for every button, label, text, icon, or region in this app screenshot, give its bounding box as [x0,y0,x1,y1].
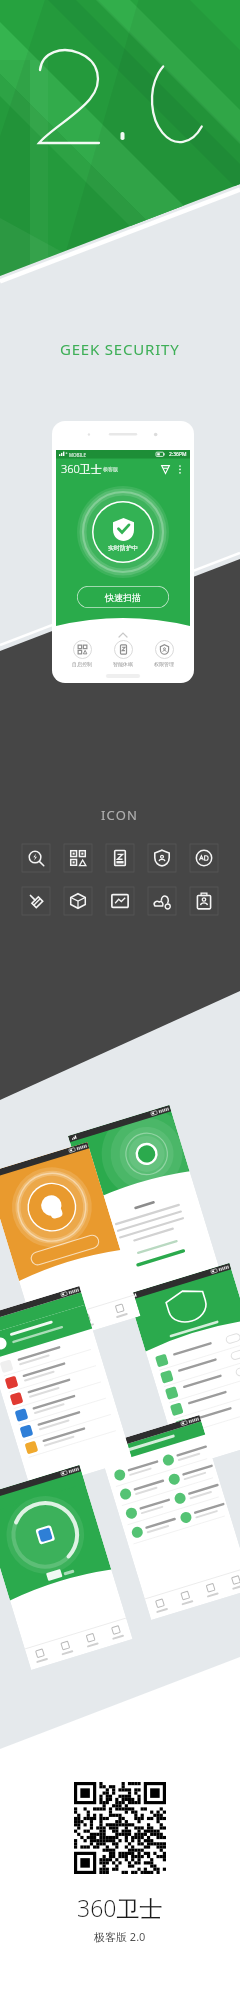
button[interactable]: Statistics [106,887,134,915]
staticText: 权限管理 [154,661,174,667]
button[interactable]: Smart sleep [105,640,141,667]
button[interactable]: Ad block [190,844,218,872]
staticText: 自启控制 [72,661,92,667]
staticText: ICON [101,806,139,824]
button[interactable]: Protection status [158,462,172,476]
staticText: 360卫士 [77,1892,163,1923]
button[interactable]: Traffic [148,887,176,915]
staticText: GEEK SECURITY [60,339,180,359]
staticText: MOBILE [69,452,86,458]
button[interactable]: Clean [22,887,50,915]
button[interactable]: Profile [190,887,218,915]
button[interactable]: More options [174,463,186,475]
button[interactable]: 快速扫描 [77,586,169,608]
button[interactable]: Permissions [148,844,176,872]
button[interactable]: Permission manager [146,640,182,667]
button[interactable]: QR code [64,844,92,872]
button[interactable]: Auto-start control [64,640,100,667]
staticText: 快速扫描 [105,592,141,603]
staticText: 极客版 2.0 [94,1929,146,1944]
staticText: 智能休眠 [113,661,133,667]
button[interactable]: Quick scan [22,844,50,872]
staticText: 2:36PM [169,451,187,458]
staticText: 实时防护中 [108,544,138,552]
staticText: 360卫士 [61,461,102,476]
button[interactable]: Package [64,887,92,915]
staticText: 极客版 [103,466,118,472]
button[interactable]: Smart sleep [106,844,134,872]
